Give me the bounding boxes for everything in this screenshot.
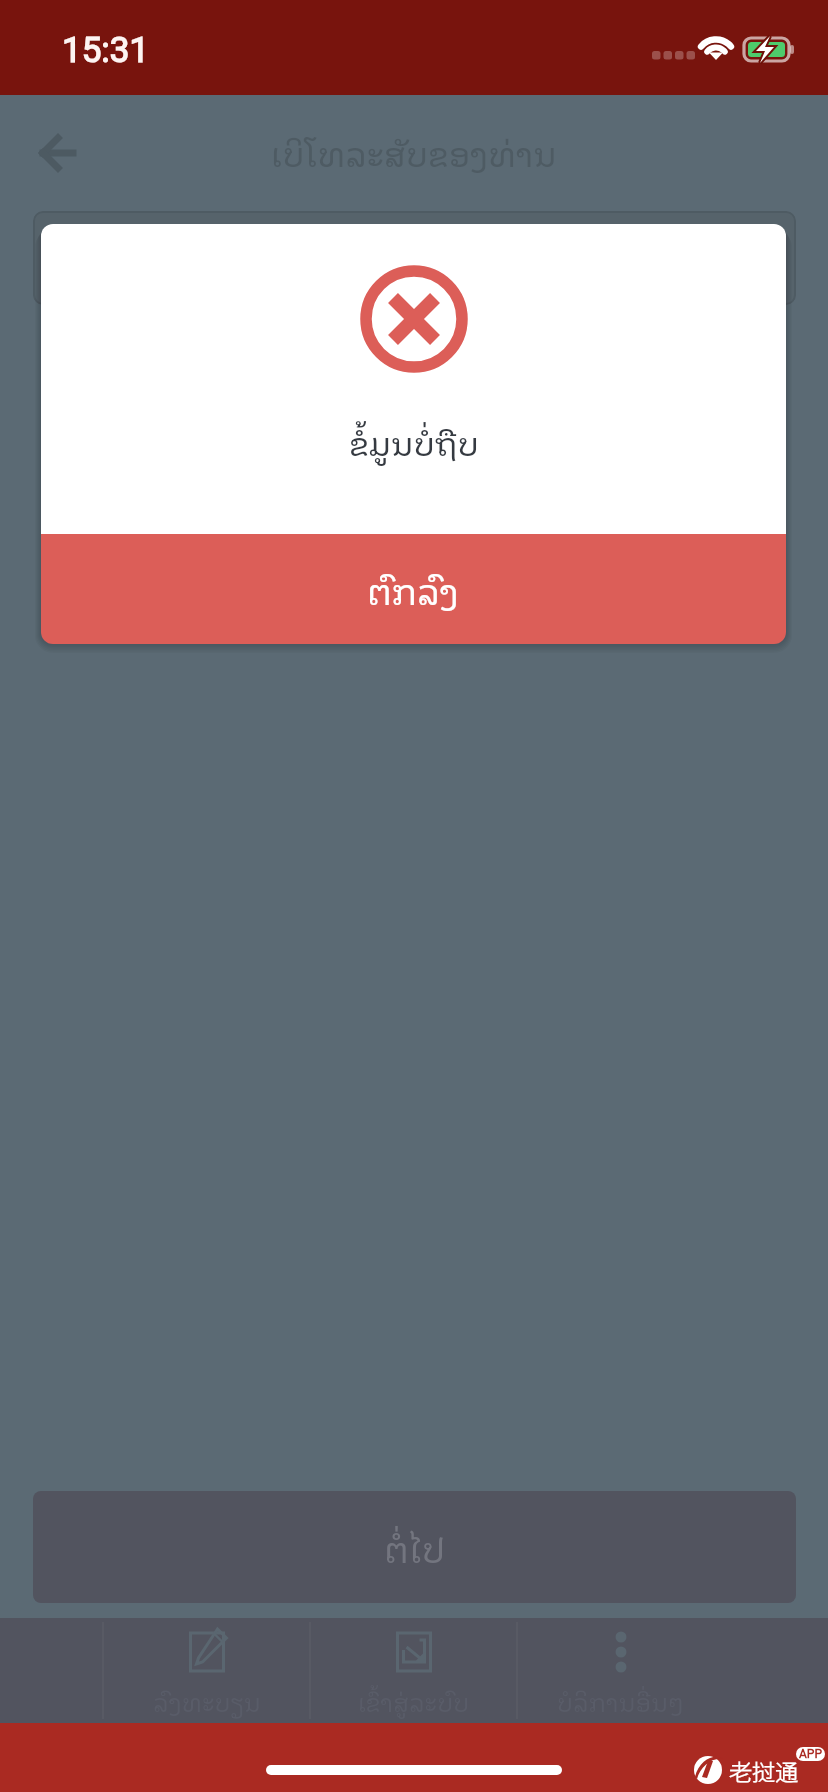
staticText: 老挝通 [729, 1754, 798, 1787]
staticText: 15:31 [62, 30, 150, 71]
button[interactable]: ລົງທະບຽນ [103, 1618, 310, 1723]
staticText: ຕົກລົງ [367, 561, 460, 617]
button[interactable]: ເຂົ້າສູ່ລະບົບ [310, 1618, 517, 1723]
staticText: ເບິໂທລະສັບຂອງທ່ານ [271, 126, 557, 179]
button[interactable]: ຕົກລົງ [41, 534, 786, 644]
staticText: ຂໍ້ມູນບໍ່ຖືບ [349, 416, 479, 467]
button[interactable]: Phone number input [33, 211, 796, 305]
staticText: APP [799, 1747, 822, 1761]
staticText: ຕໍ່ໄປ [384, 1519, 446, 1575]
button[interactable]: Back [24, 121, 88, 185]
